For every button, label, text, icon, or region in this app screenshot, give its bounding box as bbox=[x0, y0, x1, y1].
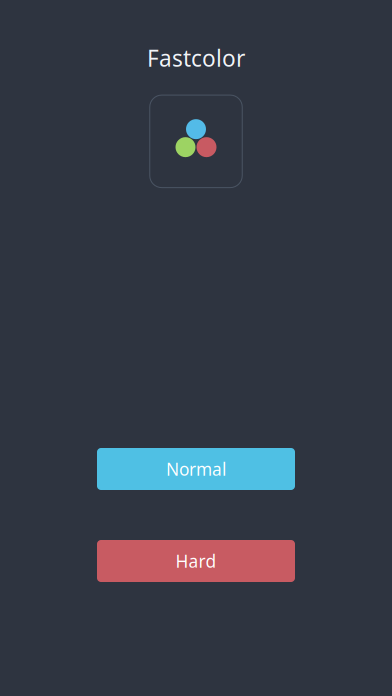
staticText: Hard bbox=[175, 549, 216, 572]
staticText: Fastcolor bbox=[147, 43, 245, 73]
button[interactable]: Normal bbox=[97, 448, 295, 490]
staticText: Normal bbox=[166, 457, 226, 480]
button[interactable]: Hard bbox=[97, 540, 295, 582]
